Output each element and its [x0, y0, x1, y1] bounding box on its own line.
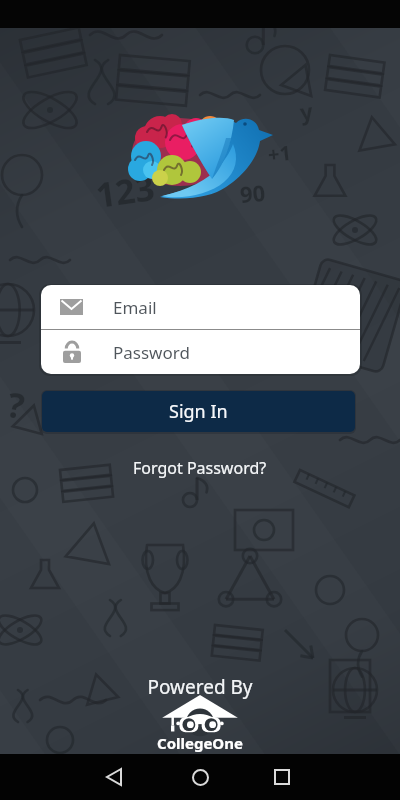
- button[interactable]: [176, 754, 224, 800]
- staticText: ?: [4, 381, 29, 429]
- staticText: CollegeOne: [157, 733, 243, 753]
- staticText: Sign In: [169, 399, 228, 424]
- staticText: Email: [113, 296, 157, 319]
- button[interactable]: CollegeOne: [140, 695, 260, 753]
- staticText: 90: [239, 177, 267, 209]
- staticText: Forgot Password?: [133, 457, 267, 479]
- button[interactable]: Password: [41, 330, 360, 374]
- staticText: Password: [113, 341, 190, 364]
- button[interactable]: [258, 754, 306, 800]
- staticText: y: [298, 95, 315, 127]
- button[interactable]: Forgot Password?: [0, 455, 400, 481]
- staticText: 123: [93, 164, 158, 218]
- button[interactable]: Email: [41, 285, 360, 329]
- staticText: +1: [267, 139, 292, 168]
- button[interactable]: Sign In: [42, 391, 355, 432]
- button[interactable]: [90, 754, 138, 800]
- staticText: Powered By: [0, 674, 400, 700]
